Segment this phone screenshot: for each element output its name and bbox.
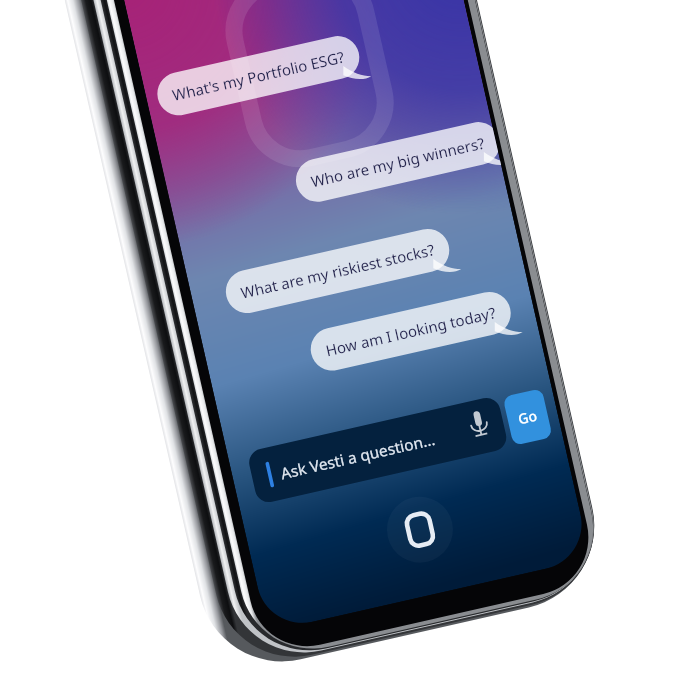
button[interactable] xyxy=(0,0,680,680)
